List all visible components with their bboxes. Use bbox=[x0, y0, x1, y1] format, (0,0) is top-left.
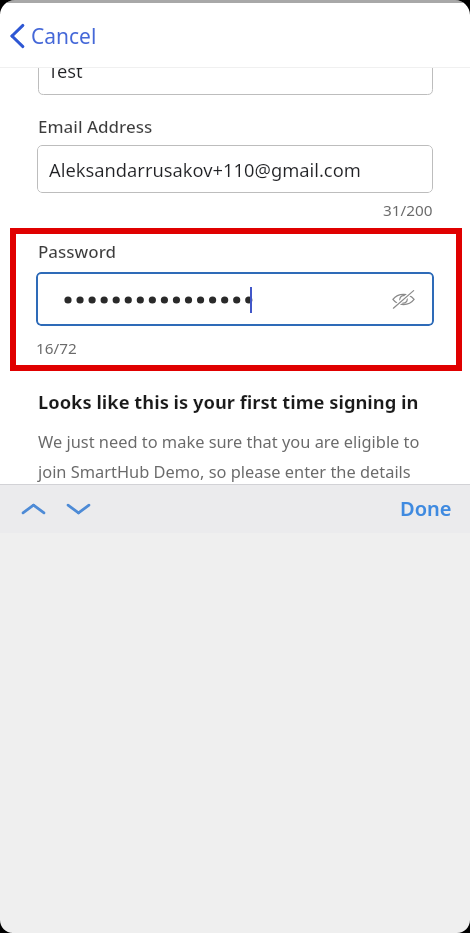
staticText: Email Address bbox=[38, 115, 153, 138]
button[interactable]: Next field bbox=[56, 487, 100, 531]
button[interactable]: Aleksandarrusakov+110@gmail.com bbox=[37, 145, 433, 193]
button[interactable]: Cancel bbox=[0, 17, 111, 55]
staticText: Done bbox=[400, 495, 452, 522]
staticText: Aleksandarrusakov+110@gmail.com bbox=[49, 157, 361, 182]
staticText: Test bbox=[48, 68, 83, 83]
staticText: Password bbox=[38, 240, 117, 263]
button[interactable]: Show password bbox=[386, 282, 420, 316]
button[interactable]: Previous field bbox=[11, 487, 55, 531]
button[interactable]: Show password bbox=[36, 272, 434, 326]
staticText: Cancel bbox=[31, 22, 97, 51]
staticText: Looks like this is your first time signi… bbox=[38, 389, 419, 414]
staticText: We just need to make sure that you are e… bbox=[38, 430, 428, 482]
staticText: 31/200 bbox=[383, 200, 433, 221]
staticText: 16/72 bbox=[36, 338, 77, 359]
button[interactable]: Done bbox=[382, 485, 470, 532]
